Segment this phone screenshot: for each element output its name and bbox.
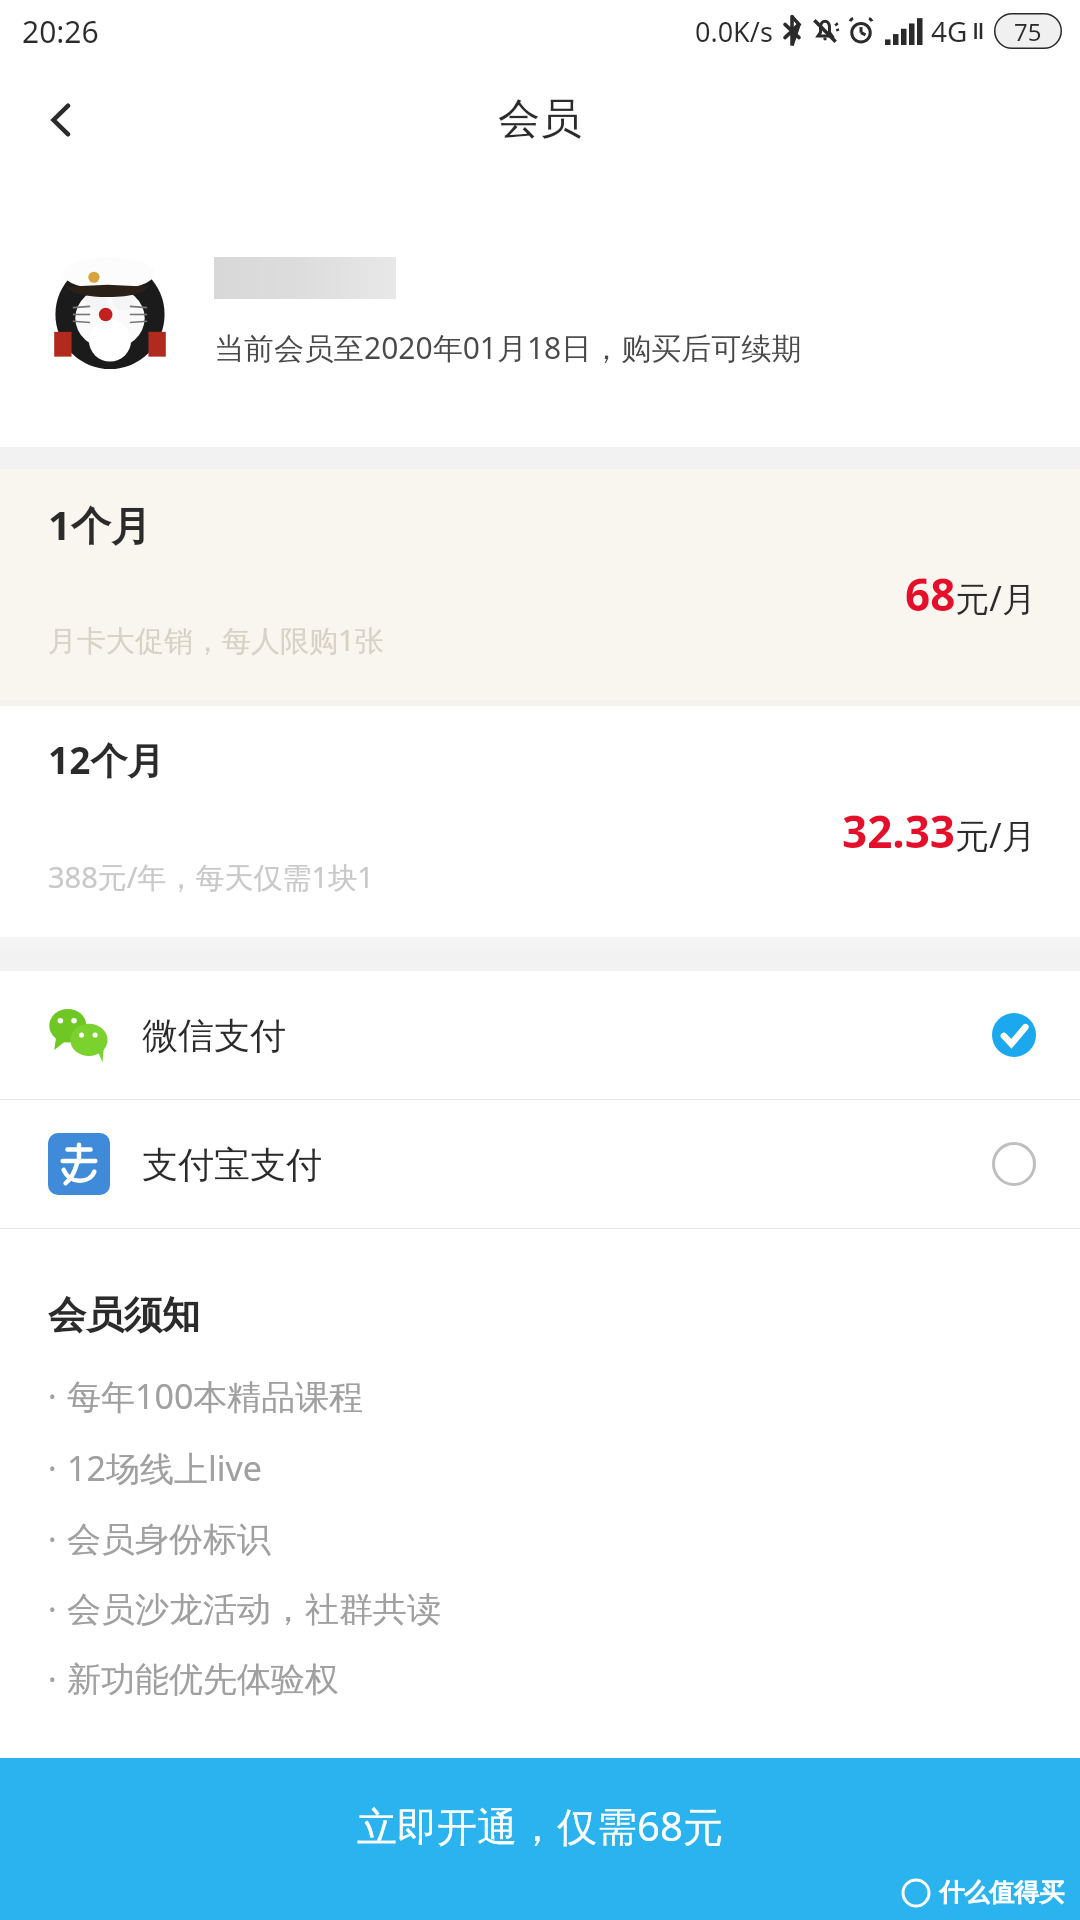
button[interactable]: 1个月 bbox=[0, 469, 1080, 700]
staticText: · bbox=[48, 1587, 57, 1631]
button[interactable]: 微信支付 bbox=[0, 971, 1080, 1099]
staticText: 每年100本精品课程 bbox=[67, 1373, 364, 1419]
staticText: 什么值得买 bbox=[939, 1877, 1064, 1908]
staticText: · bbox=[48, 1374, 57, 1418]
staticText: 会员 bbox=[498, 93, 582, 146]
staticText: 立即开通，仅需68元 bbox=[357, 1798, 723, 1853]
staticText: 会员沙龙活动，社群共读 bbox=[67, 1588, 441, 1631]
staticText: 68元/月 bbox=[905, 564, 1036, 624]
staticText: 当前会员至2020年01月18日，购买后可续期 bbox=[214, 327, 802, 368]
staticText: · bbox=[48, 1446, 57, 1490]
button[interactable]: 立即开通，仅需68元 bbox=[0, 1758, 1080, 1920]
staticText: 1个月 bbox=[48, 497, 151, 552]
staticText: 0.0K/s bbox=[695, 13, 773, 50]
staticText: 20:26 bbox=[22, 11, 99, 52]
staticText: 12个月 bbox=[48, 734, 165, 785]
staticText: 12场线上live bbox=[67, 1445, 262, 1491]
staticText: 会员身份标识 bbox=[67, 1518, 271, 1561]
staticText: 4G bbox=[931, 12, 968, 50]
button[interactable]: 支付宝支付 bbox=[0, 1100, 1080, 1228]
staticText: · bbox=[48, 1517, 57, 1561]
button[interactable]: Back bbox=[24, 82, 100, 158]
staticText: 新功能优先体验权 bbox=[67, 1658, 339, 1701]
staticText: 75 bbox=[1014, 15, 1042, 48]
staticText: 388元/年，每天仅需1块1 bbox=[48, 857, 374, 897]
staticText: 32.33元/月 bbox=[842, 801, 1036, 861]
staticText: 微信支付 bbox=[142, 1013, 286, 1058]
button[interactable]: 12个月 bbox=[0, 706, 1080, 937]
staticText: · bbox=[48, 1657, 57, 1701]
staticText: 月卡大促销，每人限购1张 bbox=[48, 620, 384, 660]
staticText: 会员须知 bbox=[48, 1291, 200, 1339]
staticText: 支付宝支付 bbox=[142, 1142, 322, 1187]
